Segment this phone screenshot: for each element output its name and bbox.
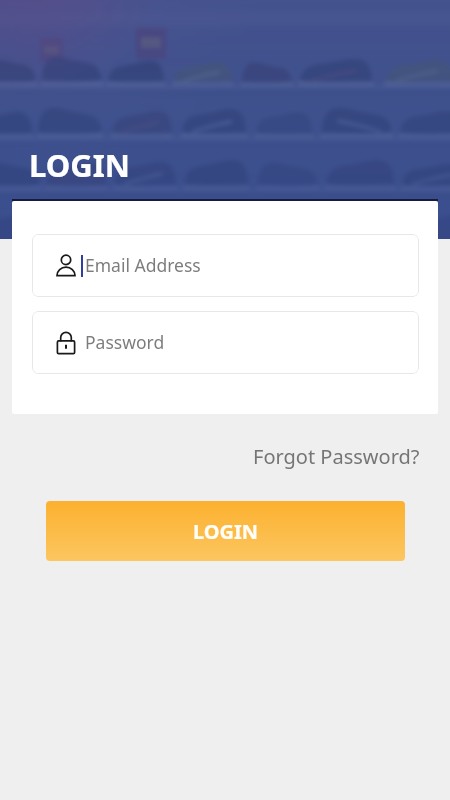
staticText: LOGIN xyxy=(193,518,259,545)
button[interactable]: Forgot Password? xyxy=(245,439,428,474)
staticText: LOGIN xyxy=(29,144,130,186)
button[interactable]: LOGIN xyxy=(46,501,405,561)
staticText: Email Address xyxy=(85,253,201,277)
other: Password xyxy=(56,331,76,355)
staticText: Forgot Password? xyxy=(253,443,420,470)
button[interactable]: Password xyxy=(32,311,419,374)
staticText: Password xyxy=(85,330,165,354)
button[interactable]: Account xyxy=(32,234,419,297)
other: Account xyxy=(56,254,76,278)
